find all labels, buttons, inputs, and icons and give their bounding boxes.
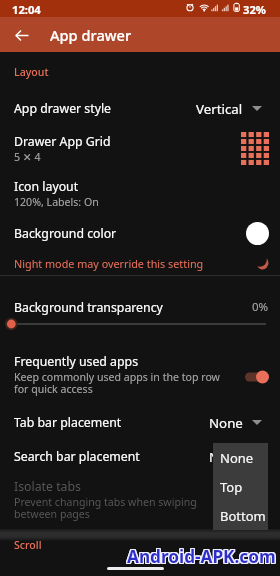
- staticText: 0%: [252, 299, 269, 315]
- staticText: Bottom: [220, 507, 266, 525]
- staticText: Background color: [14, 225, 117, 242]
- staticText: App drawer style: [14, 100, 112, 117]
- button[interactable]: Background color: [0, 221, 280, 245]
- button[interactable]: Top: [213, 474, 268, 499]
- staticText: Android-APK.com: [126, 545, 275, 568]
- staticText: Android-APK.com: [127, 546, 276, 569]
- staticText: Android-APK.com: [128, 545, 277, 568]
- staticText: Layout: [14, 65, 49, 79]
- staticText: None: [209, 414, 243, 432]
- staticText: Top: [220, 478, 243, 496]
- staticText: Background transparency: [14, 299, 163, 316]
- staticText: 12:04: [12, 2, 41, 17]
- staticText: Isolate tabs: [14, 478, 81, 495]
- button[interactable]: App drawer style: [0, 93, 280, 124]
- staticText: Android-APK.com: [127, 545, 276, 568]
- button[interactable]: Layout: [14, 65, 49, 79]
- button[interactable]: Night mode may override this setting: [0, 252, 280, 274]
- staticText: Keep commonly used apps in the top row f…: [14, 370, 220, 396]
- staticText: 120%, Labels: On: [14, 195, 99, 209]
- staticText: None: [220, 449, 254, 467]
- button[interactable]: Drawer App Grid: [0, 128, 280, 169]
- staticText: Tab bar placement: [14, 414, 122, 431]
- button[interactable]: None: [213, 445, 268, 470]
- staticText: Night mode may override this setting: [14, 256, 204, 271]
- staticText: Icon layout: [14, 178, 79, 195]
- button[interactable]: Icon layout: [0, 173, 280, 214]
- staticText: Scroll: [14, 538, 42, 552]
- staticText: App drawer: [50, 25, 132, 45]
- button[interactable]: Back: [6, 19, 38, 51]
- button[interactable]: Scroll: [14, 538, 42, 552]
- staticText: Search bar placement: [14, 448, 140, 465]
- staticText: Vertical: [196, 100, 243, 118]
- button[interactable]: Background transparency: [0, 294, 280, 320]
- button[interactable]: Bottom: [213, 503, 268, 528]
- staticText: Drawer App Grid: [14, 133, 111, 150]
- staticText: None: [209, 448, 243, 466]
- staticText: Frequently used apps: [14, 353, 139, 370]
- button[interactable]: Frequently used apps toggle: [245, 370, 269, 384]
- staticText: Android-APK.com: [126, 546, 275, 569]
- staticText: Android-APK.com: [128, 546, 277, 569]
- staticText: Android-APK.com: [126, 544, 275, 567]
- button[interactable]: Frequently used apps: [0, 351, 280, 397]
- button[interactable]: Tab bar placement: [0, 407, 280, 438]
- staticText: Android-APK.com: [127, 544, 276, 567]
- staticText: Prevent changing tabs when swiping betwe…: [14, 495, 197, 521]
- button[interactable]: Search bar placement: [0, 441, 280, 472]
- staticText: Android-APK.com: [128, 544, 277, 567]
- staticText: 32%: [243, 2, 266, 17]
- staticText: 5 ✕ 4: [14, 150, 41, 164]
